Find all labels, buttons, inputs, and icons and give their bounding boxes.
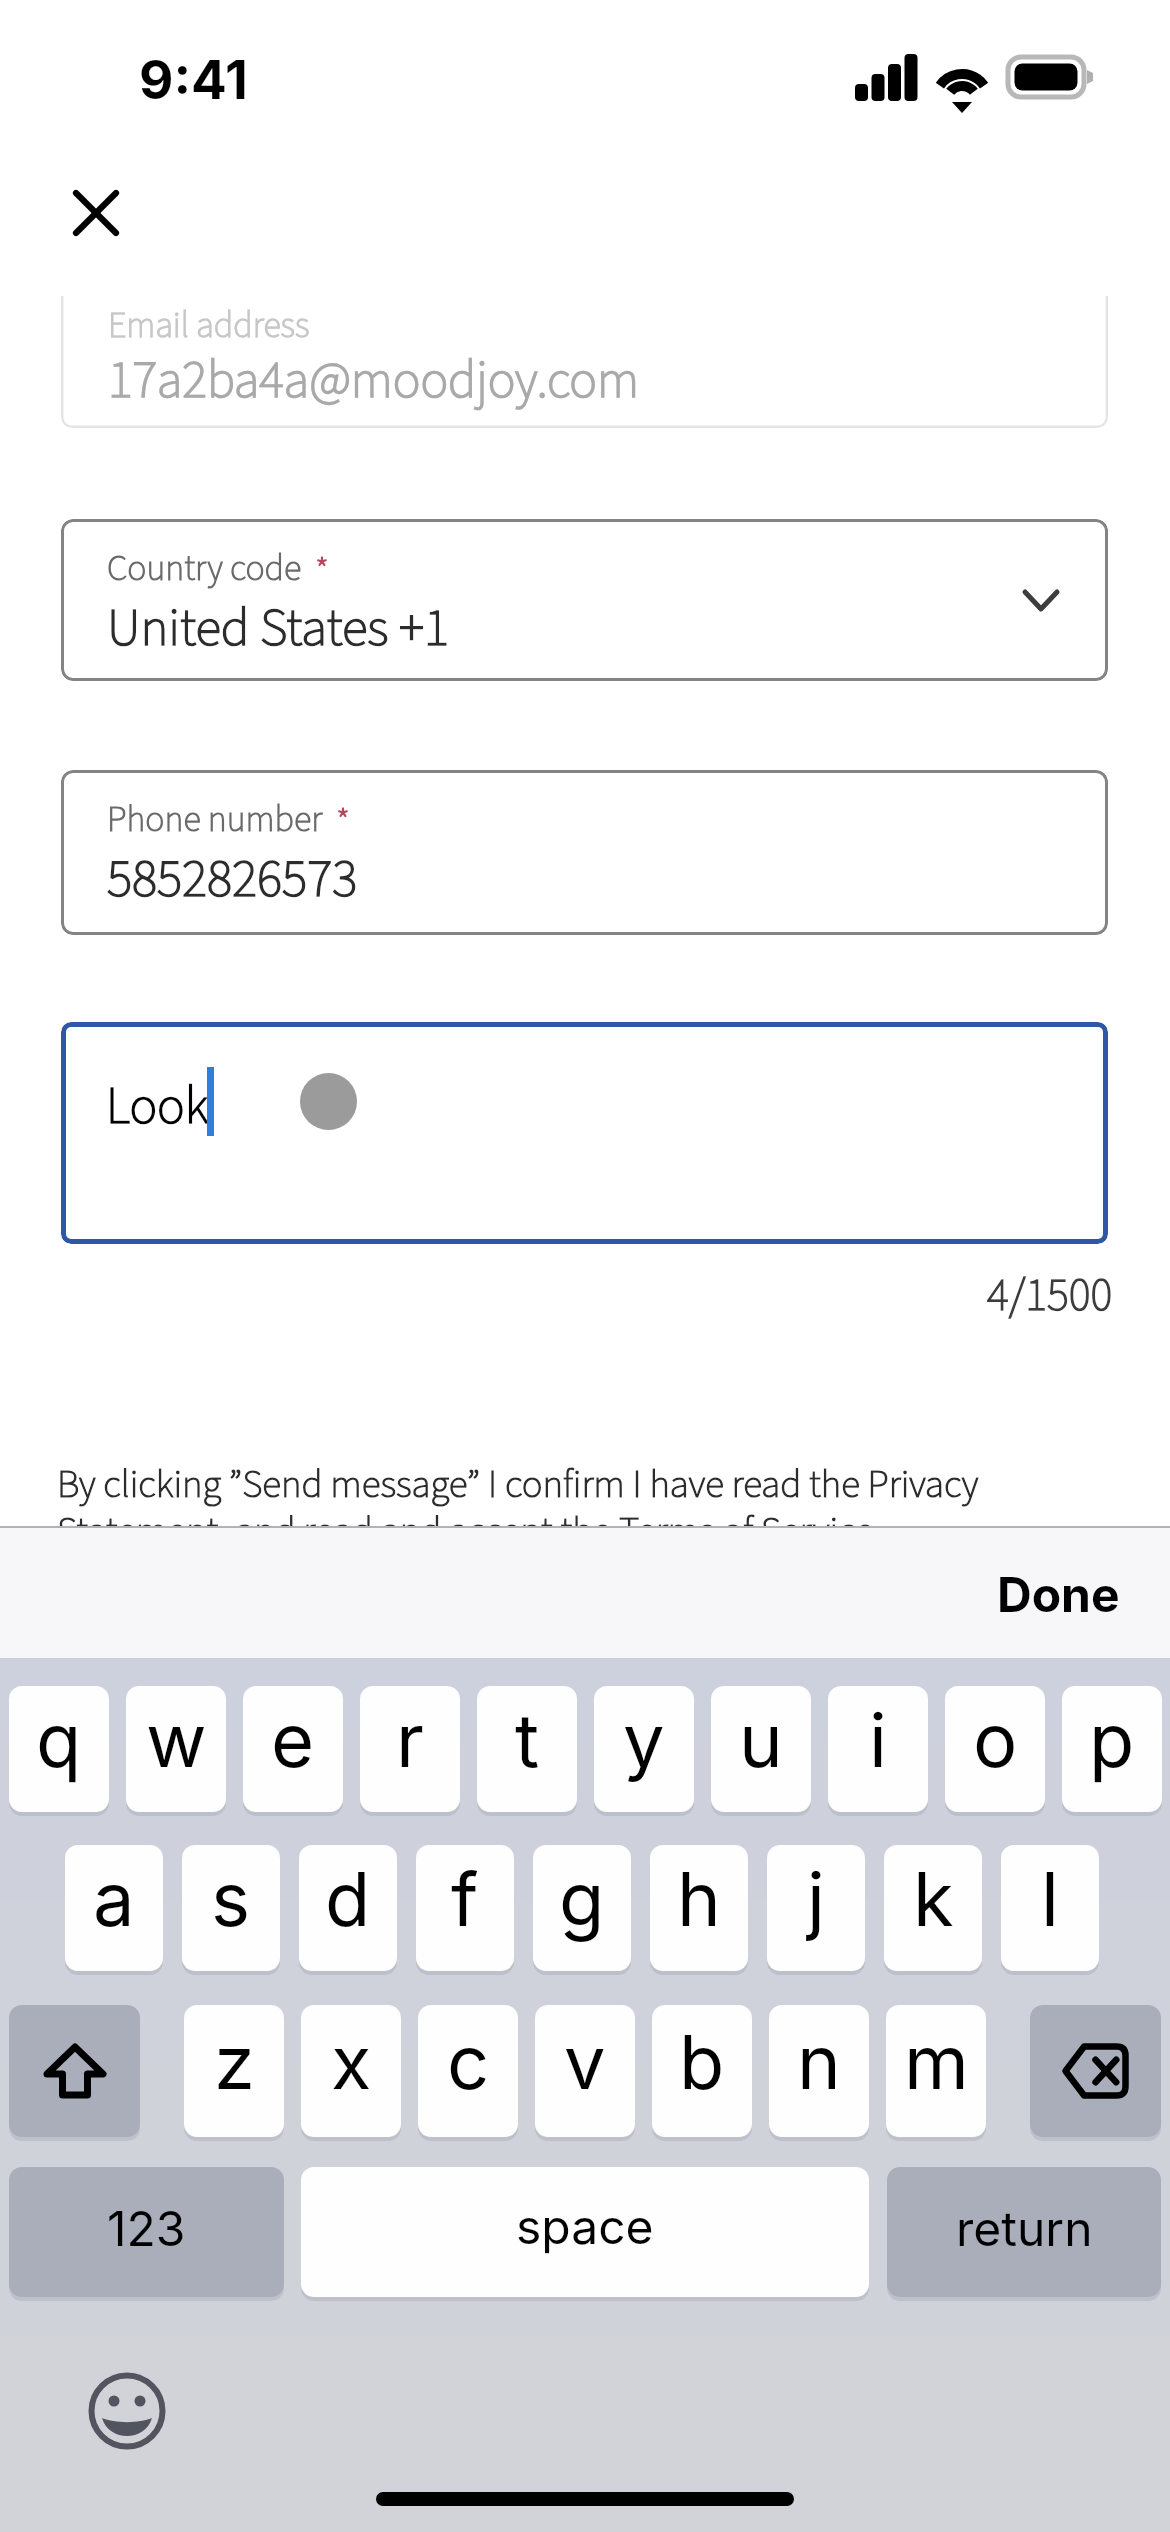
staticText: k: [913, 1854, 954, 1944]
button[interactable]: w: [126, 1686, 226, 1812]
staticText: m: [904, 2017, 969, 2107]
staticText: h: [677, 1854, 721, 1944]
button[interactable]: p: [1062, 1686, 1162, 1812]
button[interactable]: o: [945, 1686, 1045, 1812]
staticText: *: [315, 546, 329, 597]
staticText: 123: [107, 2199, 186, 2257]
button[interactable]: Done: [947, 1526, 1170, 1658]
staticText: Look: [106, 1070, 209, 1144]
staticText: o: [973, 1695, 1018, 1785]
staticText: d: [325, 1854, 371, 1944]
button[interactable]: k: [884, 1845, 982, 1971]
button[interactable]: h: [650, 1845, 748, 1971]
staticText: return: [956, 2199, 1093, 2257]
staticText: b: [679, 2017, 725, 2107]
staticText: 9:41: [139, 48, 248, 112]
button[interactable]: l: [1001, 1845, 1099, 1971]
button[interactable]: return: [887, 2167, 1161, 2297]
staticText: space: [516, 2197, 654, 2255]
button[interactable]: space: [301, 2167, 869, 2297]
staticText: t: [515, 1695, 540, 1785]
staticText: p: [1089, 1695, 1135, 1785]
button[interactable]: e: [243, 1686, 343, 1812]
staticText: Email address: [108, 300, 310, 351]
button[interactable]: r: [360, 1686, 460, 1812]
staticText: q: [36, 1695, 82, 1785]
staticText: c: [447, 2017, 490, 2107]
button[interactable]: 123: [9, 2167, 284, 2297]
staticText: f: [451, 1854, 479, 1944]
button[interactable]: z: [184, 2005, 284, 2137]
button[interactable]: m: [886, 2005, 986, 2137]
staticText: 17a2ba4a@moodjoy.com: [108, 344, 639, 418]
staticText: a: [93, 1854, 135, 1944]
staticText: x: [331, 2017, 372, 2107]
staticText: l: [1041, 1854, 1059, 1944]
button[interactable]: Look: [61, 1022, 1108, 1244]
staticText: z: [214, 2017, 255, 2107]
other: Expand: [1022, 588, 1060, 613]
button[interactable]: f: [416, 1845, 514, 1971]
staticText: 5852826573: [107, 842, 358, 917]
button[interactable]: j: [767, 1845, 865, 1971]
button[interactable]: t: [477, 1686, 577, 1812]
button[interactable]: Phone number: [61, 770, 1108, 935]
button[interactable]: d: [299, 1845, 397, 1971]
staticText: r: [396, 1695, 424, 1785]
staticText: u: [739, 1695, 783, 1785]
staticText: n: [797, 2017, 841, 2107]
staticText: Done: [997, 1565, 1120, 1623]
button[interactable]: a: [65, 1845, 163, 1971]
button[interactable]: u: [711, 1686, 811, 1812]
staticText: w: [146, 1695, 207, 1785]
button[interactable]: y: [594, 1686, 694, 1812]
button[interactable]: b: [652, 2005, 752, 2137]
staticText: Phone number: [107, 794, 323, 845]
button[interactable]: c: [418, 2005, 518, 2137]
button[interactable]: Email address: [61, 296, 1108, 428]
staticText: j: [807, 1854, 825, 1944]
button[interactable]: q: [9, 1686, 109, 1812]
other: Shift: [43, 2043, 107, 2099]
button[interactable]: Backspace: [1030, 2005, 1161, 2137]
staticText: g: [559, 1854, 605, 1944]
button[interactable]: s: [182, 1845, 280, 1971]
button[interactable]: Close: [44, 161, 148, 265]
staticText: i: [869, 1695, 887, 1785]
staticText: United States +1: [107, 591, 450, 666]
staticText: By clicking ”Send message” I confirm I h…: [57, 1457, 1057, 1559]
staticText: Country code: [107, 543, 302, 594]
button[interactable]: v: [535, 2005, 635, 2137]
button[interactable]: Shift: [9, 2005, 140, 2137]
button[interactable]: Emoji keyboard: [88, 2372, 166, 2450]
button[interactable]: i: [828, 1686, 928, 1812]
staticText: s: [211, 1854, 251, 1944]
button[interactable]: n: [769, 2005, 869, 2137]
other: Backspace: [1062, 2043, 1129, 2099]
staticText: v: [564, 2017, 606, 2107]
staticText: y: [623, 1695, 665, 1785]
button[interactable]: g: [533, 1845, 631, 1971]
button[interactable]: Country code: [61, 519, 1108, 681]
staticText: 4/1500: [987, 1263, 1113, 1329]
staticText: e: [271, 1695, 315, 1785]
staticText: *: [336, 797, 350, 848]
button[interactable]: x: [301, 2005, 401, 2137]
